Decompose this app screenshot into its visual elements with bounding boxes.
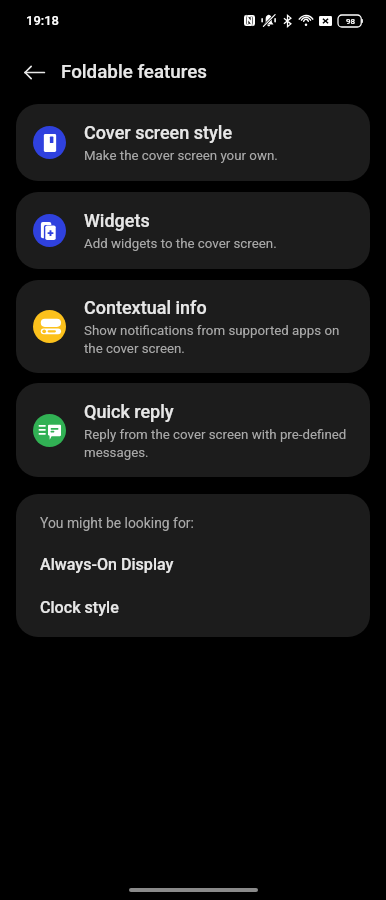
- staticText: 98: [346, 17, 356, 26]
- button[interactable]: Back: [14, 52, 54, 92]
- staticText: You might be looking for:: [40, 515, 194, 531]
- staticText: Cover screen style: [84, 122, 233, 143]
- button[interactable]: Always-On Display: [16, 555, 370, 574]
- button[interactable]: Contextual info: [16, 280, 370, 373]
- staticText: Make the cover screen your own.: [84, 148, 278, 164]
- staticText: Quick reply: [84, 401, 174, 422]
- staticText: Reply from the cover screen with pre-def…: [84, 427, 356, 460]
- staticText: Contextual info: [84, 297, 207, 318]
- staticText: Foldable features: [61, 61, 207, 83]
- staticText: 19:18: [26, 13, 59, 28]
- staticText: Widgets: [84, 210, 150, 231]
- button[interactable]: Cover screen style: [16, 104, 370, 181]
- button[interactable]: Clock style: [16, 598, 370, 617]
- button[interactable]: Quick reply: [16, 383, 370, 477]
- button[interactable]: Widgets: [16, 192, 370, 269]
- staticText: Add widgets to the cover screen.: [84, 236, 277, 252]
- staticText: Show notifications from supported apps o…: [84, 323, 356, 356]
